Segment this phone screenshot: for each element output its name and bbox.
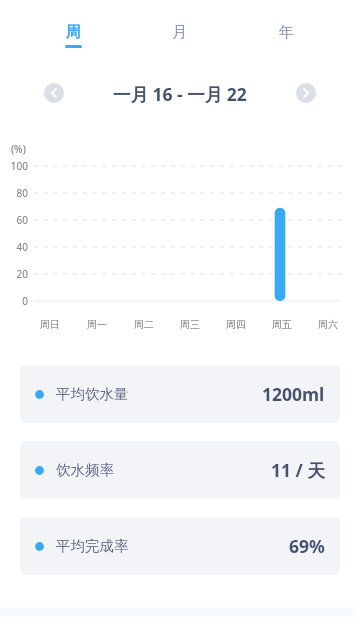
staticText: 年 <box>279 23 294 42</box>
staticText: 月 <box>172 23 187 42</box>
staticText: 1200ml <box>262 382 325 406</box>
button[interactable]: 平均饮水量 <box>20 365 340 423</box>
staticText: 0 <box>22 294 28 308</box>
button[interactable]: 平均完成率 <box>20 517 340 575</box>
staticText: 饮水频率 <box>56 461 114 479</box>
staticText: 平均完成率 <box>56 537 129 555</box>
staticText: 一月 16 - 一月 22 <box>113 82 247 106</box>
staticText: 40 <box>16 240 28 254</box>
staticText: 周 <box>66 23 81 42</box>
staticText: 周六 <box>318 318 338 331</box>
staticText: 20 <box>16 267 28 281</box>
staticText: 周四 <box>226 318 246 331</box>
staticText: 周五 <box>272 318 292 331</box>
staticText: 100 <box>10 159 28 173</box>
button[interactable]: Next week <box>296 83 316 103</box>
staticText: 周二 <box>134 318 154 331</box>
staticText: 80 <box>16 186 28 200</box>
button[interactable]: 月 <box>126 0 233 52</box>
staticText: 周日 <box>40 318 60 331</box>
button[interactable]: Previous week <box>44 83 64 103</box>
staticText: 60 <box>16 213 28 227</box>
staticText: 11 / 天 <box>271 458 325 482</box>
button[interactable]: 年 <box>233 0 340 52</box>
button[interactable]: 饮水频率 <box>20 441 340 499</box>
staticText: (%) <box>11 142 26 156</box>
staticText: 周三 <box>180 318 200 331</box>
staticText: 周一 <box>87 318 107 331</box>
staticText: 平均饮水量 <box>56 385 129 403</box>
staticText: 69% <box>289 534 325 558</box>
button[interactable]: 周 <box>20 0 126 52</box>
